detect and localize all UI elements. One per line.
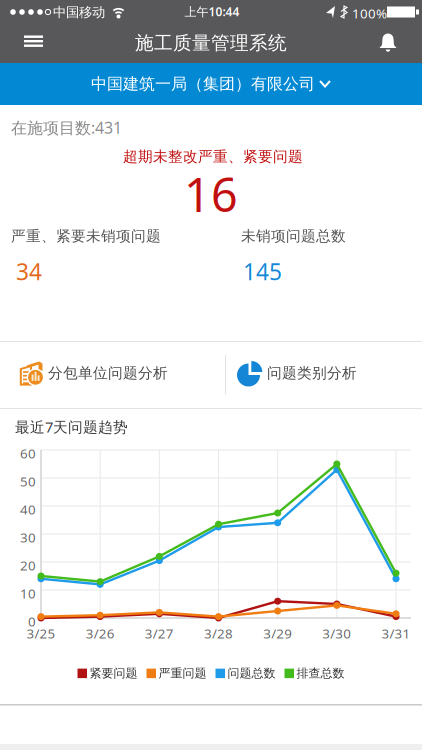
staticText: 3/29 xyxy=(263,624,292,642)
staticText: 超期未整改严重、紧要问题 xyxy=(123,147,303,165)
staticText: 100% xyxy=(352,4,387,22)
button[interactable]: 问题类别分析 xyxy=(225,342,422,408)
staticText: 30 xyxy=(20,528,36,546)
staticText: 中国建筑一局（集团）有限公司 xyxy=(91,74,315,94)
staticText: 严重、紧要未销项问题 xyxy=(11,227,161,245)
staticText: 3/26 xyxy=(86,624,115,642)
staticText: 50 xyxy=(20,472,36,490)
staticText: 20 xyxy=(20,556,36,574)
button[interactable]: 中国建筑一局（集团）有限公司 xyxy=(0,63,422,105)
staticText: 10 xyxy=(20,584,36,602)
staticText: 施工质量管理系统 xyxy=(135,31,287,54)
staticText: 问题总数 xyxy=(227,666,275,681)
staticText: 0 xyxy=(28,612,36,630)
staticText: 16 xyxy=(184,163,238,225)
staticText: 紧要问题 xyxy=(89,666,137,681)
staticText: 最近7天问题趋势 xyxy=(15,417,128,436)
staticText: 60 xyxy=(20,444,36,462)
staticText: 145 xyxy=(243,256,282,287)
button[interactable]: 分包单位问题分析 xyxy=(0,342,225,408)
staticText: 未销项问题总数 xyxy=(241,227,346,245)
staticText: 排查总数 xyxy=(296,666,344,681)
staticText: 在施项目数:431 xyxy=(11,117,122,138)
staticText: 严重问题 xyxy=(158,666,206,681)
staticText: 上午10:44 xyxy=(184,3,239,19)
staticText: 中国移动 xyxy=(53,4,105,20)
staticText: 问题类别分析 xyxy=(267,364,357,382)
staticText: 3/31 xyxy=(381,624,410,642)
staticText: 3/30 xyxy=(322,624,351,642)
staticText: 40 xyxy=(20,500,36,518)
staticText: 3/25 xyxy=(26,624,55,642)
button[interactable]: Menu xyxy=(11,25,55,63)
staticText: 分包单位问题分析 xyxy=(48,364,168,382)
button[interactable]: Notifications xyxy=(366,25,410,63)
staticText: 3/27 xyxy=(145,624,174,642)
staticText: 34 xyxy=(16,256,42,287)
staticText: 3/28 xyxy=(204,624,233,642)
